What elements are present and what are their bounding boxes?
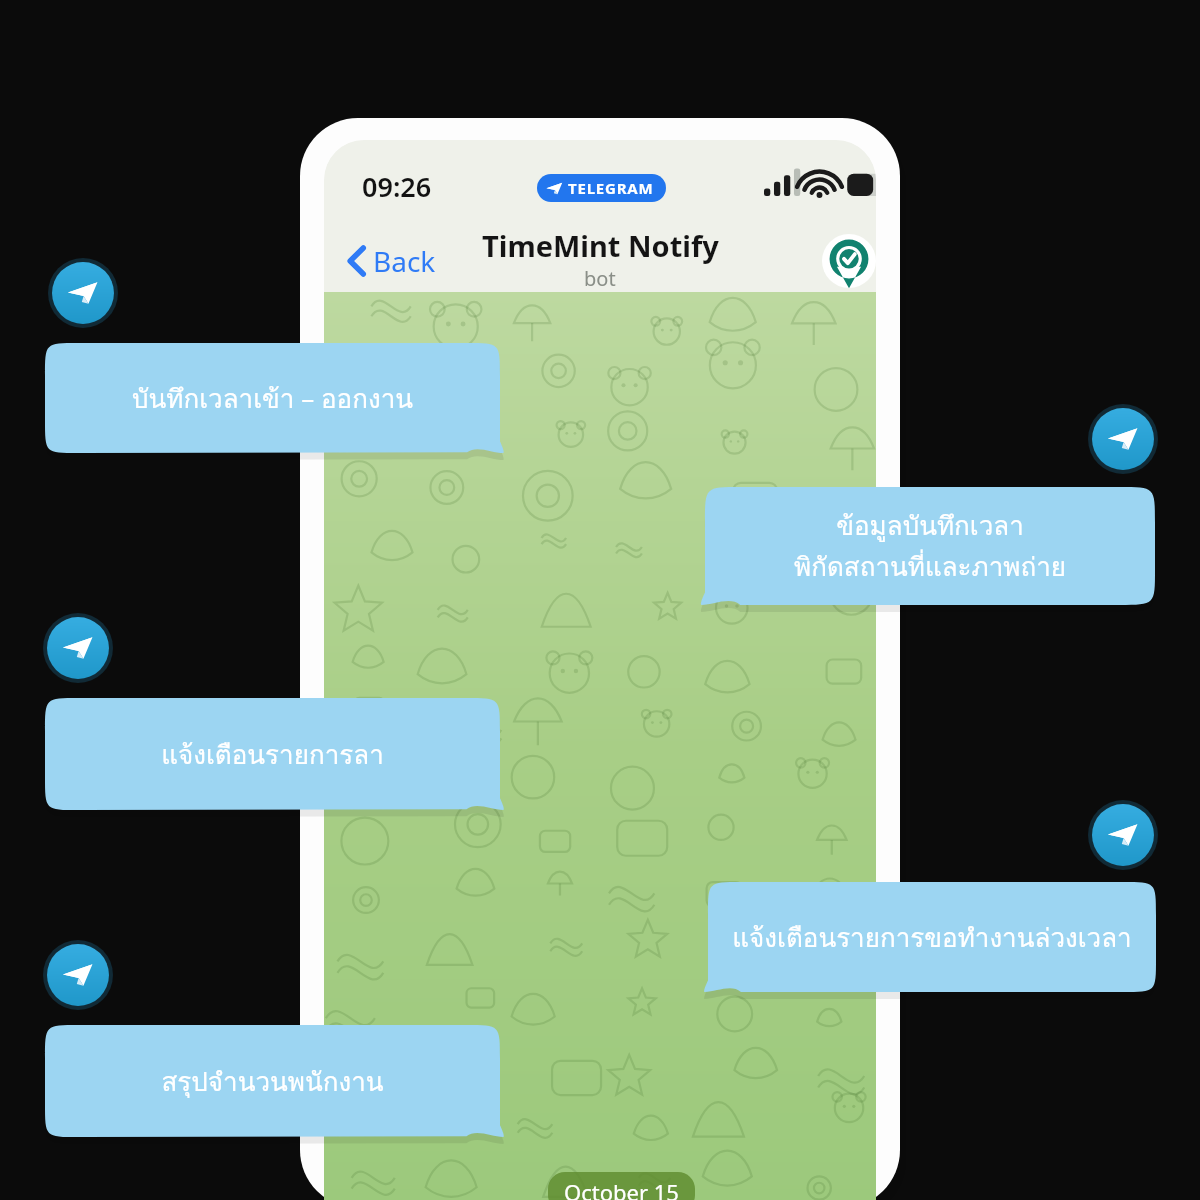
button[interactable]: Back (348, 242, 436, 280)
staticText: TimeMint Notify (482, 226, 719, 265)
staticText: สรุปจำนวนพนักงาน (161, 1061, 384, 1102)
button[interactable]: Telegram (1088, 800, 1158, 870)
staticText: แจ้งเตือนรายการลา (161, 734, 384, 775)
button[interactable]: TELEGRAM (546, 174, 654, 202)
button[interactable]: Telegram (48, 258, 118, 328)
button[interactable]: Telegram (43, 613, 113, 683)
button[interactable]: ข้อมูลบันทึกเวลา (705, 487, 1155, 605)
button[interactable]: Telegram (43, 940, 113, 1010)
button[interactable]: Verified bot (822, 234, 876, 288)
button[interactable]: บันทึกเวลาเข้า – ออกงาน (45, 343, 500, 453)
staticText: Back (373, 242, 436, 280)
button[interactable]: สรุปจำนวนพนักงาน (45, 1025, 500, 1137)
staticText: October 15 (564, 1177, 679, 1200)
staticText: bot (584, 265, 616, 292)
button[interactable]: October 15 (564, 1177, 679, 1200)
staticText: แจ้งเตือนรายการขอทำงานล่วงเวลา (732, 917, 1132, 958)
button[interactable]: Telegram (1088, 404, 1158, 474)
staticText: TELEGRAM (568, 178, 654, 198)
staticText: 09:26 (362, 168, 432, 205)
staticText: ข้อมูลบันทึกเวลา (836, 505, 1024, 546)
staticText: พิกัดสถานที่และภาพถ่าย (794, 546, 1066, 587)
button[interactable]: แจ้งเตือนรายการลา (45, 698, 500, 810)
staticText: บันทึกเวลาเข้า – ออกงาน (132, 378, 413, 419)
button[interactable]: แจ้งเตือนรายการขอทำงานล่วงเวลา (708, 882, 1156, 992)
